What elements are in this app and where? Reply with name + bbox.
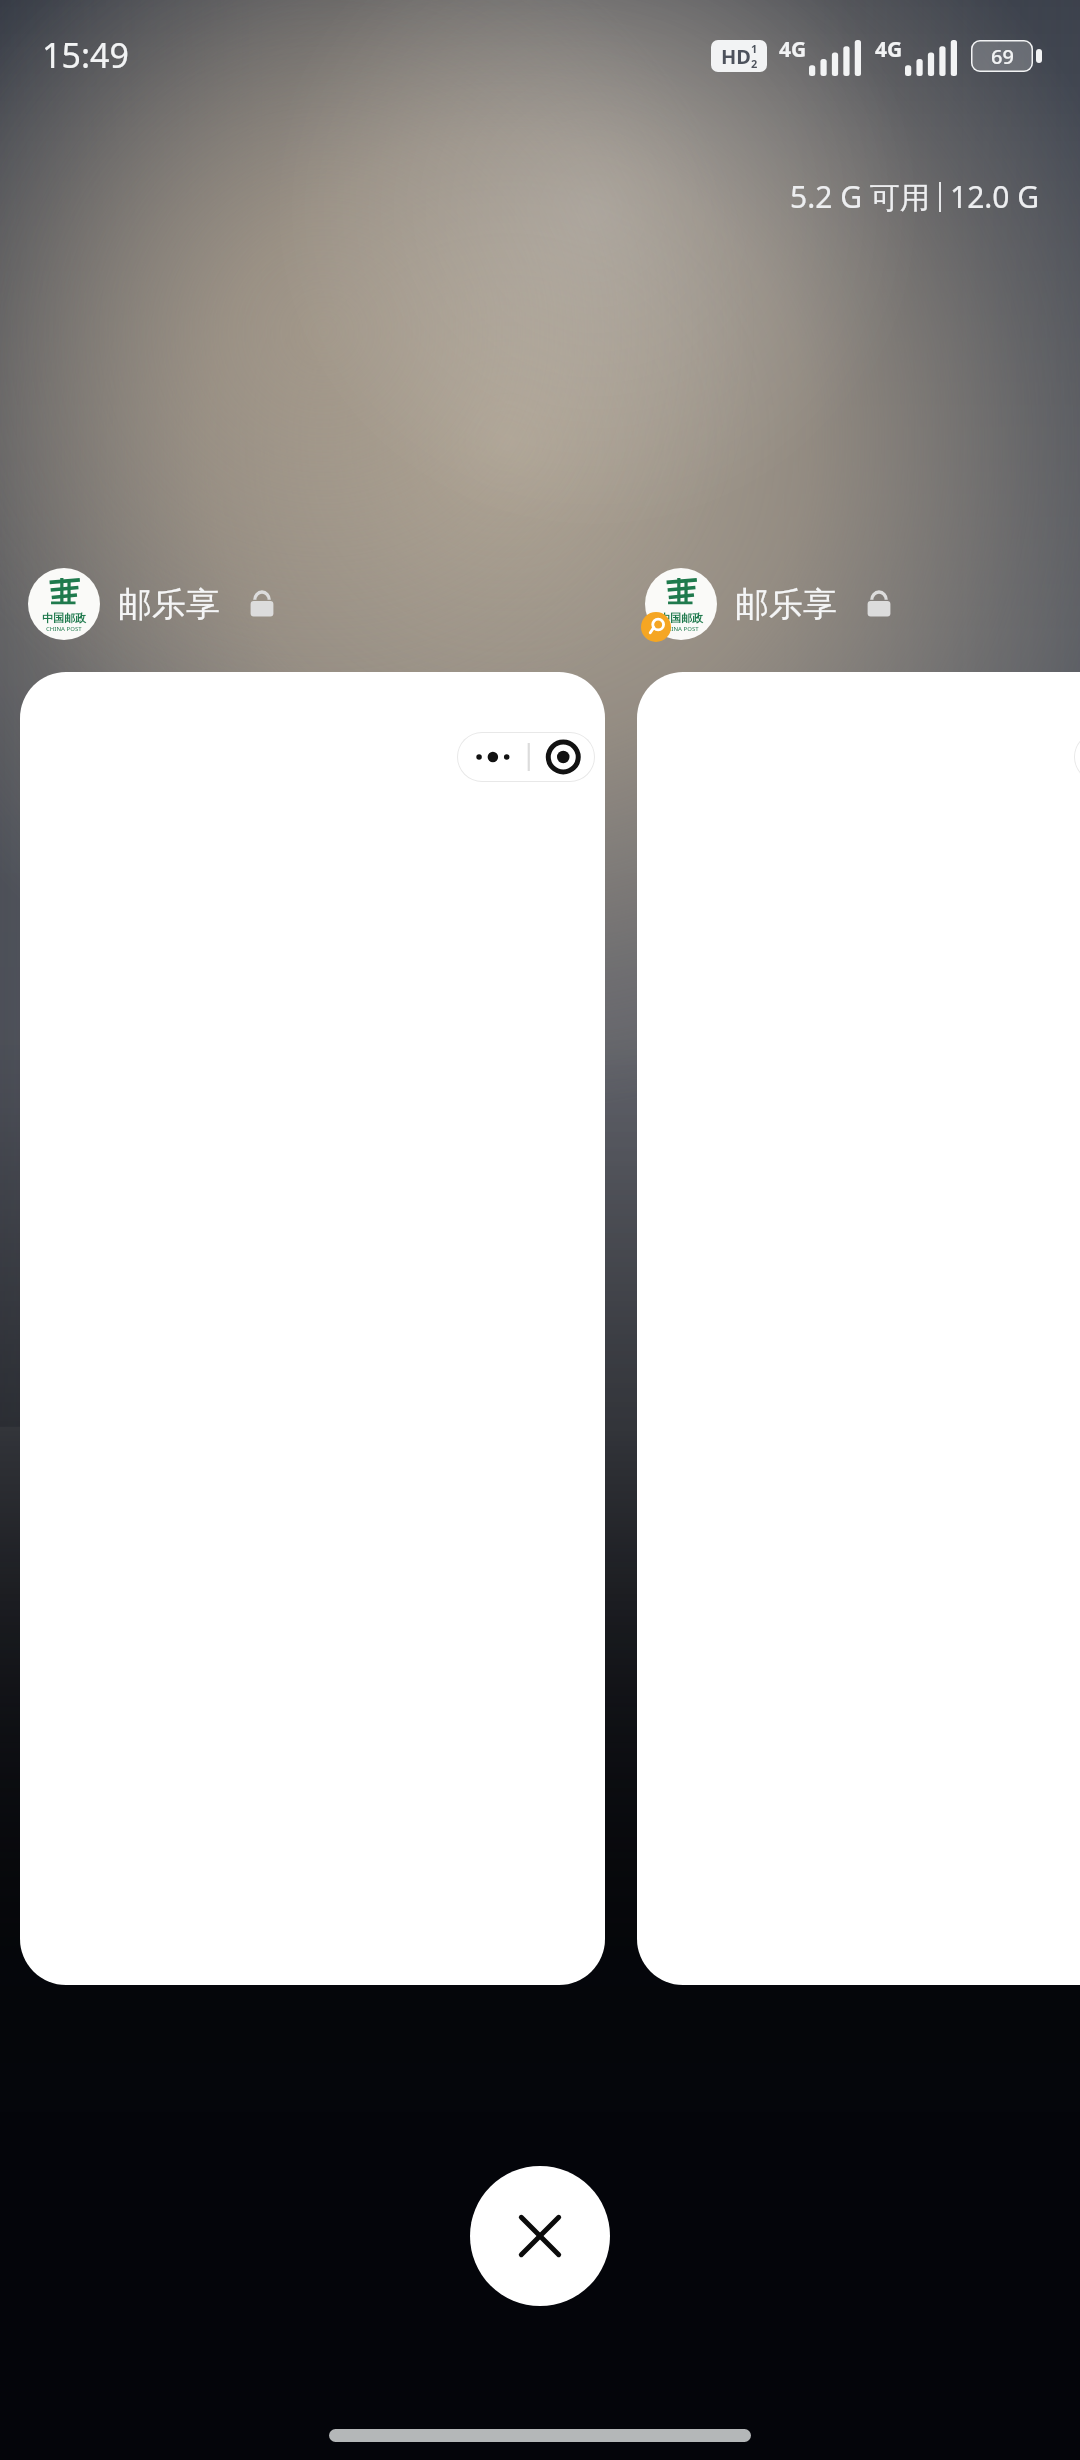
staticText: 中国邮政 bbox=[42, 611, 86, 625]
button[interactable]: Mini program menu bbox=[637, 672, 1080, 1985]
button[interactable]: Mini program menu bbox=[457, 732, 595, 782]
button[interactable]: 中国邮政 bbox=[28, 565, 280, 643]
staticText: 4G bbox=[875, 35, 903, 64]
staticText: 4G bbox=[779, 35, 807, 64]
button[interactable]: 中国邮政 bbox=[645, 565, 897, 643]
button[interactable]: Locked task bbox=[244, 586, 280, 622]
staticText: 15:49 bbox=[42, 32, 129, 78]
staticText: 中国邮政 bbox=[659, 611, 703, 625]
staticText: CHINA POST bbox=[46, 625, 82, 633]
staticText: 12.0 G bbox=[950, 176, 1040, 217]
staticText: 邮乐享 bbox=[735, 583, 837, 626]
button[interactable]: Mini program menu bbox=[1074, 732, 1080, 782]
staticText: 69 bbox=[991, 43, 1014, 70]
staticText: 邮乐享 bbox=[118, 583, 220, 626]
button[interactable]: Close all bbox=[470, 2166, 610, 2306]
button[interactable]: Mini program menu bbox=[20, 672, 605, 1985]
staticText: HD bbox=[721, 43, 751, 70]
staticText: 1 bbox=[751, 41, 758, 56]
staticText: CHINA POST bbox=[663, 625, 699, 633]
staticText: 2 bbox=[751, 56, 758, 71]
staticText: 5.2 G 可用 bbox=[790, 176, 930, 217]
button[interactable]: Locked task bbox=[861, 586, 897, 622]
